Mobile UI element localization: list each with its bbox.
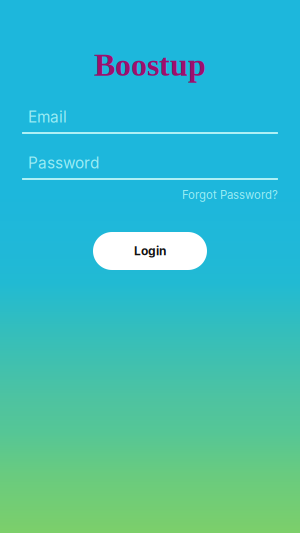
- button[interactable]: Password: [22, 154, 278, 180]
- staticText: Boostup: [94, 47, 206, 83]
- staticText: Login: [134, 244, 166, 258]
- button[interactable]: Forgot Password?: [22, 188, 278, 202]
- button[interactable]: Email: [22, 108, 278, 134]
- staticText: Email: [28, 108, 67, 126]
- staticText: Forgot Password?: [182, 188, 278, 202]
- staticText: Password: [28, 154, 99, 172]
- button[interactable]: Login: [93, 232, 207, 270]
